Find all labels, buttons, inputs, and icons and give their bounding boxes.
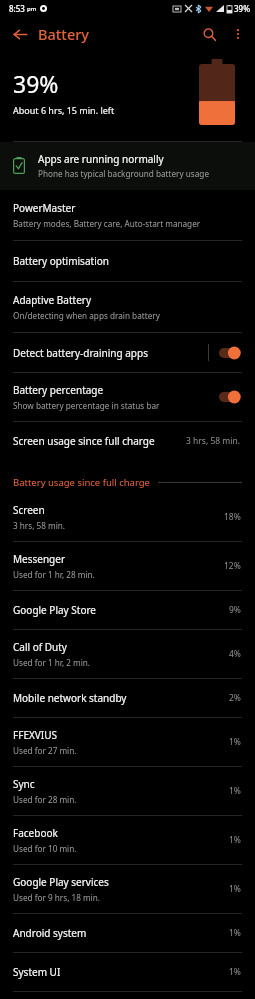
button[interactable]: Sync (0, 767, 255, 815)
staticText: Battery optimisation (13, 254, 109, 268)
staticText: PowerMaster (13, 201, 76, 215)
staticText: pm (27, 5, 37, 13)
staticText: Used for 1 hr, 28 min. (13, 569, 95, 580)
staticText: Android system (13, 926, 87, 940)
staticText: 39% (13, 68, 59, 99)
staticText: 8:53 (9, 3, 25, 14)
staticText: Show battery percentage in status bar (13, 400, 160, 411)
button[interactable]: Search (194, 19, 224, 49)
staticText: Detect battery-draining apps (13, 346, 148, 360)
staticText: Phone has typical background battery usa… (38, 168, 210, 179)
staticText: Used for 9 hrs, 18 min. (13, 892, 100, 903)
staticText: 1% (229, 785, 241, 797)
staticText: 1% (229, 736, 241, 748)
staticText: Used for 10 min. (13, 843, 77, 854)
staticText: 12% (224, 560, 241, 572)
staticText: Sync (13, 777, 35, 791)
staticText: Battery usage since full charge (13, 476, 150, 489)
staticText: Used for 1 hr, 2 min. (13, 657, 91, 668)
staticText: Facebook (13, 826, 58, 840)
staticText: 1% (229, 927, 241, 939)
staticText: System UI (13, 965, 61, 979)
button[interactable]: Google Play services (0, 865, 255, 913)
staticText: 1% (229, 966, 241, 978)
button[interactable]: Battery percentage (0, 373, 255, 421)
staticText: Battery (38, 24, 89, 44)
staticText: Battery modes, Battery care, Auto-start … (13, 218, 201, 229)
staticText: Used for 27 min. (13, 745, 77, 756)
button[interactable]: PowerMaster (0, 190, 255, 240)
staticText: Messenger (13, 552, 66, 566)
staticText: 39% (234, 3, 250, 14)
staticText: 2% (229, 692, 241, 704)
button[interactable]: Back (6, 20, 34, 48)
staticText: Google Play services (13, 875, 109, 889)
button[interactable]: Apps are running normally (0, 142, 255, 190)
button[interactable]: Messenger (0, 542, 255, 590)
staticText: Screen (13, 503, 45, 517)
button[interactable]: More options (224, 20, 252, 48)
staticText: 18% (224, 511, 241, 523)
staticText: Call of Duty (13, 640, 67, 654)
button[interactable]: Google Play Store (0, 591, 255, 629)
staticText: About 6 hrs, 15 min. left (13, 104, 115, 116)
staticText: FFEXVIUS (13, 728, 57, 742)
staticText: Mobile network standby (13, 691, 127, 705)
button[interactable]: Battery optimisation (0, 241, 255, 281)
button[interactable]: Android system (0, 914, 255, 952)
button[interactable]: Toggle Detect battery-draining apps (219, 346, 245, 360)
button[interactable]: Detect battery-draining apps (0, 333, 255, 372)
staticText: 1% (229, 883, 241, 895)
staticText: Screen usage since full charge (13, 434, 186, 448)
button[interactable]: Facebook (0, 816, 255, 864)
button[interactable]: Toggle Battery percentage (219, 390, 245, 404)
button[interactable]: FFEXVIUS (0, 718, 255, 766)
button[interactable]: Adaptive Battery (0, 282, 255, 332)
staticText: 9% (229, 604, 241, 616)
staticText: 4% (229, 648, 241, 660)
staticText: Google Play Store (13, 603, 97, 617)
staticText: 1% (229, 834, 241, 846)
staticText: 3 hrs, 58 min. (186, 435, 241, 447)
button[interactable]: Call of Duty (0, 630, 255, 678)
staticText: Apps are running normally (38, 152, 164, 166)
staticText: 3 hrs, 58 min. (13, 520, 66, 531)
button[interactable]: Screen usage since full charge (0, 422, 255, 460)
staticText: Battery percentage (13, 383, 104, 397)
staticText: Used for 28 min. (13, 794, 77, 805)
button[interactable]: Mobile network standby (0, 679, 255, 717)
button[interactable]: Screen (0, 493, 255, 541)
button[interactable]: System UI (0, 953, 255, 991)
staticText: On/detecting when apps drain battery (13, 310, 160, 321)
staticText: Adaptive Battery (13, 293, 92, 307)
